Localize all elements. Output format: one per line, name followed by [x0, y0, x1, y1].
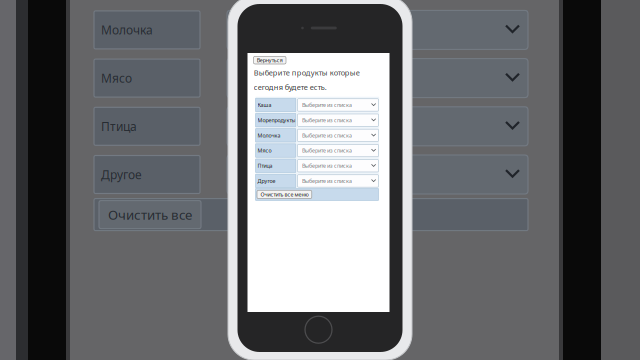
staticText: Выберите из списка [302, 147, 352, 154]
staticText: Выберите из списка [302, 177, 352, 185]
staticText: Выберите продукты которые [254, 68, 360, 78]
staticText: Птица [257, 162, 272, 169]
staticText: сегодня будете есть. [254, 82, 327, 92]
button[interactable]: Очистить все меню [257, 190, 312, 199]
staticText: Очистить все [108, 206, 192, 223]
staticText: Молочка [101, 22, 153, 38]
staticText: Каша [257, 101, 271, 109]
staticText: ка [239, 70, 252, 86]
staticText: Мясо [101, 70, 132, 86]
staticText: Мясо [257, 147, 271, 154]
staticText: Вернуться [257, 57, 283, 64]
staticText: Другое [257, 177, 275, 185]
staticText: Другое [101, 166, 142, 182]
staticText: Выберите из списка [302, 162, 352, 169]
staticText: Выберите из списка [302, 101, 352, 109]
staticText: Очистить все меню [260, 191, 308, 198]
staticText: Морепродукты [257, 116, 295, 124]
staticText: Молочка [257, 132, 280, 139]
staticText: Выберите из списка [302, 116, 352, 124]
staticText: Выберите из списка [302, 132, 352, 139]
staticText: ка [239, 166, 252, 182]
staticText: ка [239, 118, 252, 134]
button[interactable]: Вернуться [253, 56, 286, 64]
staticText: Птица [101, 118, 137, 134]
